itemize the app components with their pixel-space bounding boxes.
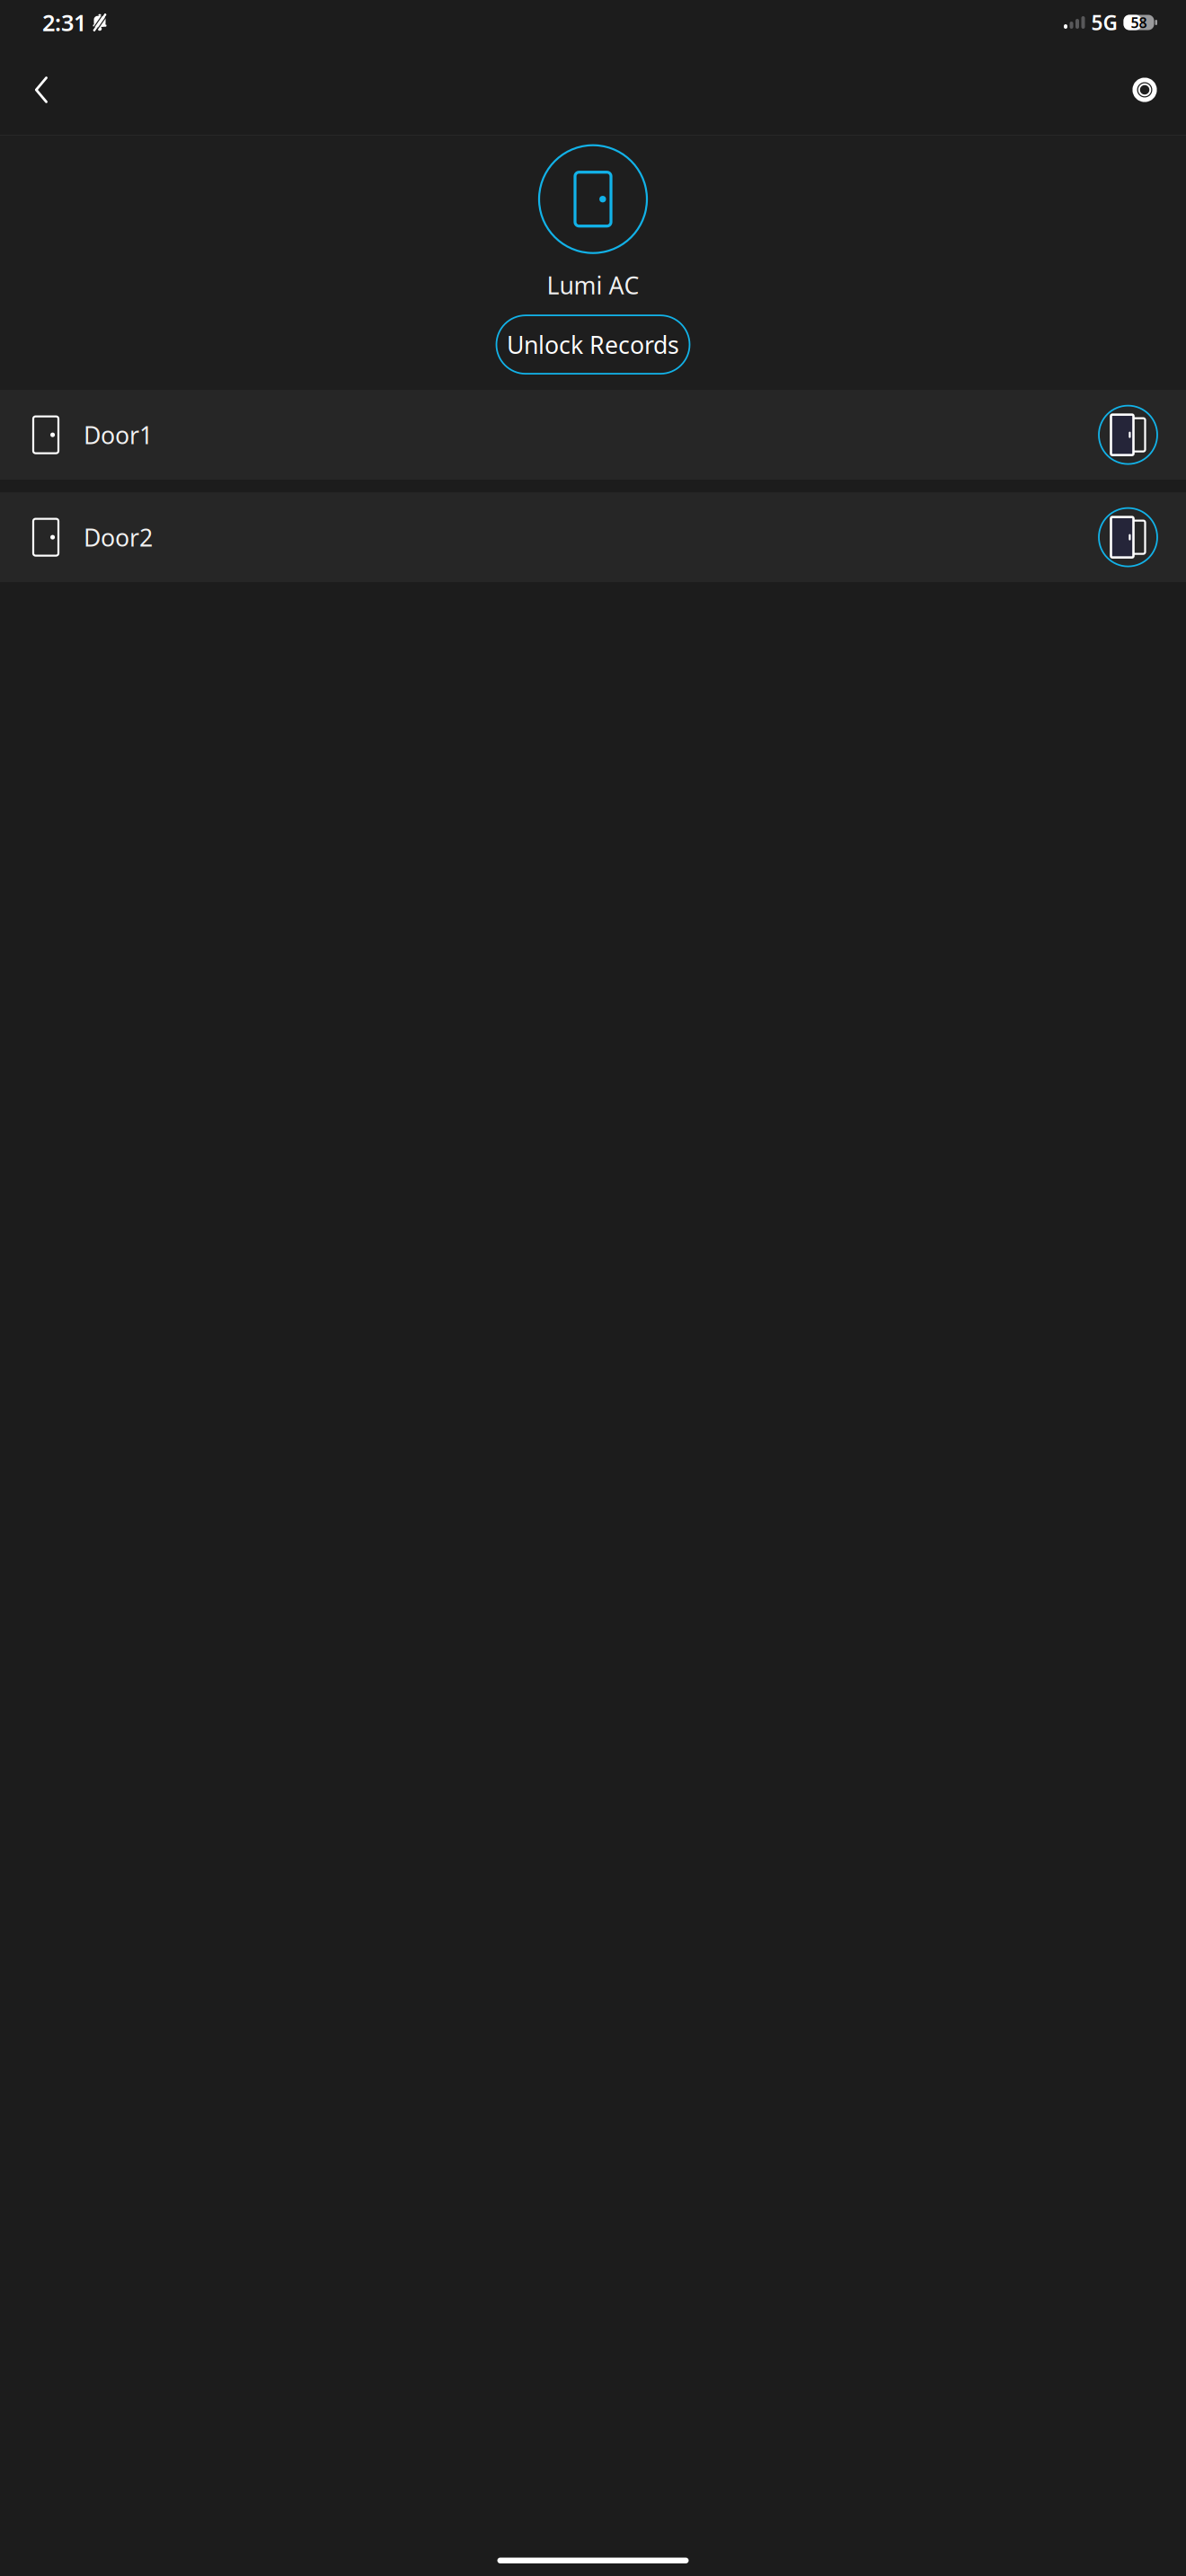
button[interactable]: Unlock Records	[496, 315, 690, 374]
button[interactable]: Back	[16, 65, 66, 115]
button[interactable]: Door2	[0, 492, 1186, 582]
button[interactable]: Settings	[1120, 65, 1170, 115]
staticText: Lumi AC	[547, 269, 639, 301]
staticText: Unlock Records	[507, 329, 679, 360]
staticText: 2:31	[42, 7, 86, 38]
staticText: 5G	[1091, 9, 1117, 36]
button[interactable]: Door1	[0, 390, 1186, 480]
staticText: Door2	[84, 521, 153, 553]
staticText: 58	[1131, 13, 1147, 32]
staticText: Door1	[84, 419, 153, 451]
